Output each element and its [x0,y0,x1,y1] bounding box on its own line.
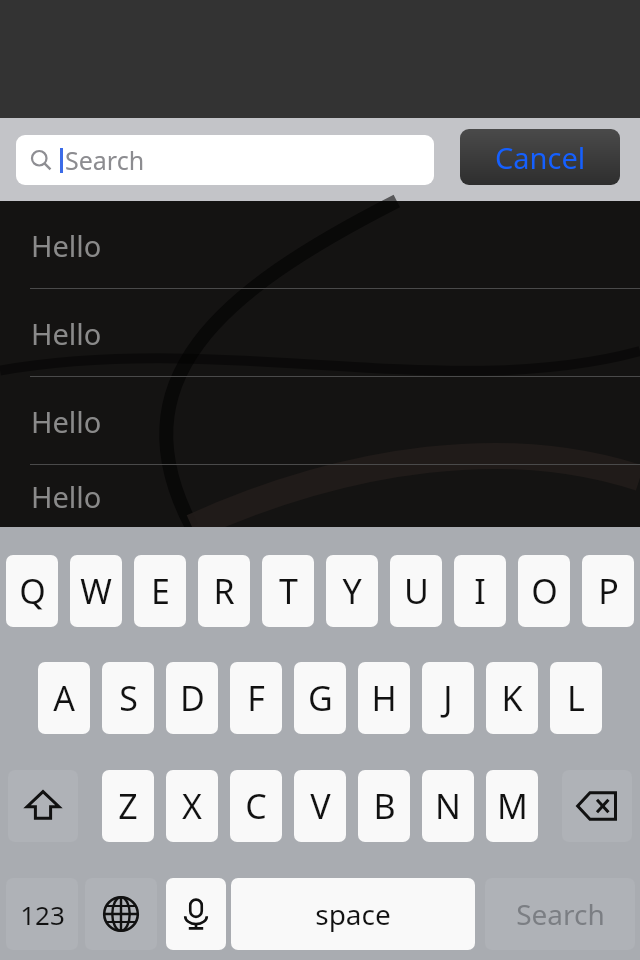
staticText: T [279,568,298,614]
staticText: V [310,783,331,829]
staticText: Z [118,783,138,829]
button[interactable]: P [582,555,634,627]
staticText: S [119,675,138,721]
button[interactable]: R [198,555,250,627]
staticText: O [531,568,558,614]
staticText: E [151,568,170,614]
button[interactable]: Search [16,135,434,185]
staticText: U [404,568,429,614]
button[interactable]: X [166,770,218,842]
button[interactable]: N [422,770,474,842]
staticText: Y [342,568,362,614]
button[interactable]: Z [102,770,154,842]
staticText: M [497,783,528,829]
button[interactable]: V [294,770,346,842]
button[interactable]: Y [326,555,378,627]
button[interactable]: Cancel [460,129,620,185]
staticText: Hello [31,402,102,441]
button[interactable]: Backspace [562,770,632,842]
button[interactable]: Hello [0,377,640,465]
staticText: J [443,675,453,721]
button[interactable]: E [134,555,186,627]
button[interactable]: Hello [0,201,640,289]
button[interactable]: 123 [6,878,78,950]
staticText: space [315,895,391,933]
staticText: A [53,675,75,721]
button[interactable]: S [102,662,154,734]
staticText: 123 [20,897,65,932]
button[interactable]: B [358,770,410,842]
staticText: B [373,783,396,829]
staticText: Hello [31,226,102,265]
staticText: I [474,568,486,614]
staticText: C [245,783,267,829]
staticText: Hello [31,477,102,516]
button[interactable]: D [166,662,218,734]
button[interactable]: W [70,555,122,627]
staticText: W [80,568,112,614]
button[interactable]: J [422,662,474,734]
staticText: X [182,783,202,829]
button[interactable]: O [518,555,570,627]
staticText: Q [19,568,46,614]
button[interactable]: C [230,770,282,842]
button[interactable]: A [38,662,90,734]
staticText: Search [516,895,605,933]
button[interactable]: Dictate [166,878,226,950]
button[interactable]: F [230,662,282,734]
button[interactable]: Q [6,555,58,627]
button[interactable]: K [486,662,538,734]
button[interactable]: U [390,555,442,627]
button[interactable]: T [262,555,314,627]
staticText: Search [65,143,145,177]
staticText: Cancel [495,138,586,177]
staticText: Hello [31,314,102,353]
button[interactable]: M [486,770,538,842]
button[interactable]: I [454,555,506,627]
button[interactable]: space [231,878,475,950]
staticText: L [567,675,585,721]
button[interactable]: Hello [0,465,640,527]
button[interactable]: H [358,662,410,734]
staticText: N [435,783,461,829]
button[interactable]: Hello [0,289,640,377]
button[interactable]: Shift [8,770,78,842]
button[interactable]: G [294,662,346,734]
button[interactable]: Search [485,878,635,950]
staticText: P [598,568,619,614]
staticText: F [247,675,265,721]
staticText: K [501,675,523,721]
button[interactable]: L [550,662,602,734]
staticText: H [371,675,397,721]
staticText: D [180,675,205,721]
button[interactable]: Change keyboard [85,878,157,950]
staticText: R [213,568,235,614]
staticText: G [308,675,333,721]
